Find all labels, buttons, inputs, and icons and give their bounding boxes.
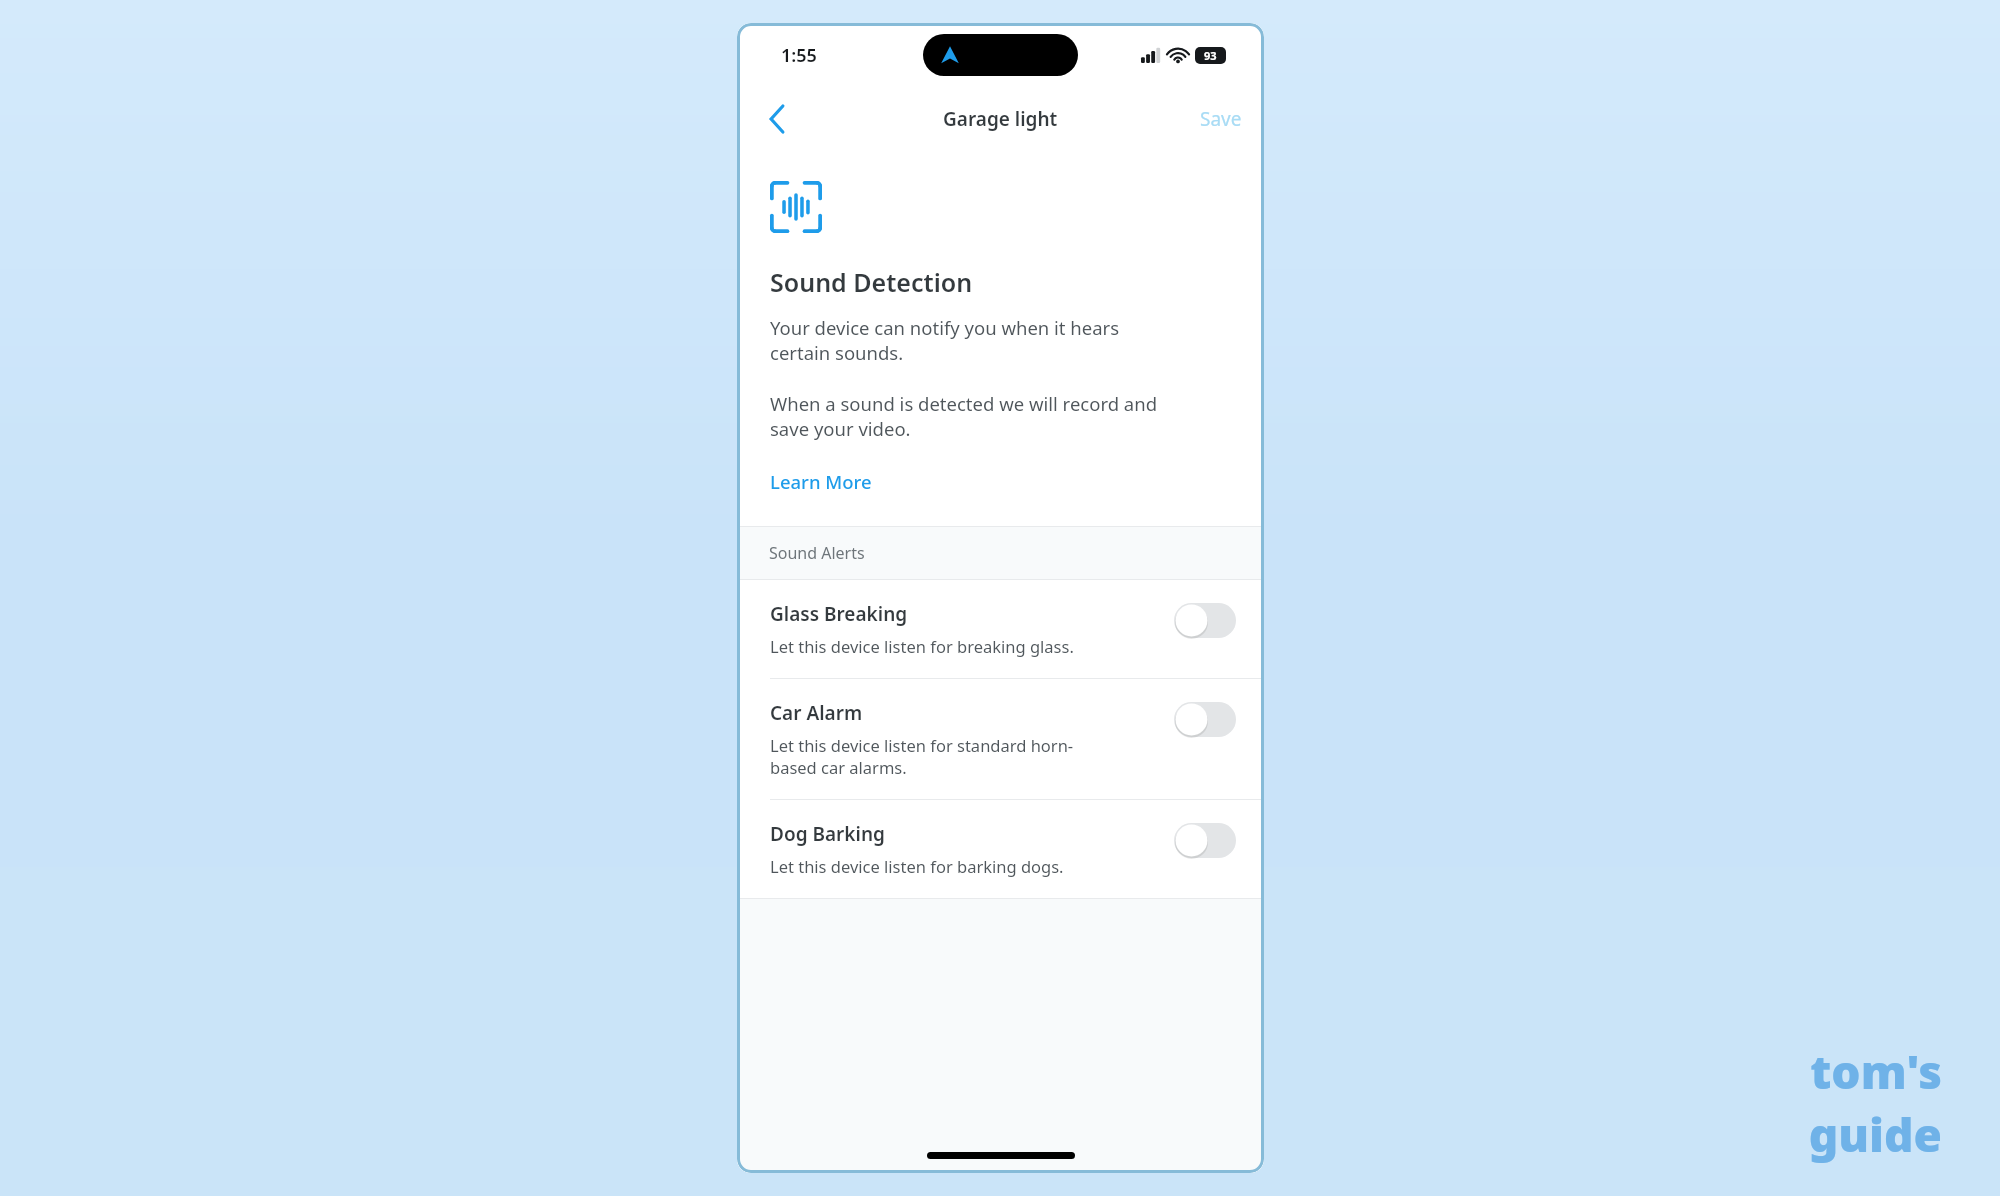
button[interactable]: Car Alarm [737, 679, 1264, 800]
staticText: 93 [1204, 48, 1217, 63]
staticText: 1:55 [781, 43, 817, 68]
staticText: Car Alarm [770, 700, 863, 726]
staticText: Save [1200, 106, 1242, 132]
staticText: based car alarms. [770, 756, 907, 778]
staticText: Let this device listen for standard horn… [770, 734, 1074, 756]
staticText: Sound Detection [770, 265, 973, 299]
staticText: Learn More [770, 469, 872, 494]
button[interactable]: Learn More [770, 469, 872, 494]
button[interactable]: Toggle off [1174, 603, 1236, 638]
button[interactable]: Save [1194, 98, 1248, 140]
staticText: Let this device listen for breaking glas… [770, 635, 1074, 657]
staticText: Garage light [943, 106, 1058, 132]
staticText: Let this device listen for barking dogs. [770, 855, 1064, 877]
staticText: guide [1808, 1103, 1942, 1166]
staticText: Glass Breaking [770, 601, 908, 627]
button[interactable]: Back [755, 97, 799, 141]
button[interactable]: Glass Breaking [737, 580, 1264, 679]
staticText: tom's [1810, 1040, 1942, 1103]
staticText: Your device can notify you when it hears [770, 315, 1120, 340]
staticText: save your video. [770, 416, 911, 441]
button[interactable]: Dog Barking [737, 800, 1264, 898]
button[interactable]: Toggle off [1174, 702, 1236, 737]
staticText: certain sounds. [770, 340, 904, 365]
staticText: Sound Alerts [769, 542, 865, 564]
staticText: When a sound is detected we will record … [770, 391, 1158, 416]
button[interactable]: Toggle off [1174, 823, 1236, 858]
staticText: Dog Barking [770, 821, 885, 847]
